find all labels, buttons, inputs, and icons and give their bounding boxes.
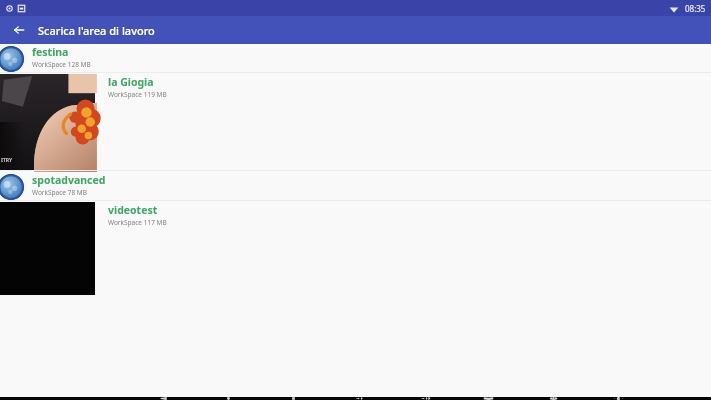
button[interactable]: Home [215,397,241,400]
staticText: ITRY [1,157,13,164]
staticText: WorkSpace 128 MB [32,60,91,69]
button[interactable]: spotadvanced [0,172,711,200]
button[interactable]: Volume down [345,397,371,400]
button[interactable]: Recents [280,397,306,400]
staticText: WorkSpace 78 MB [32,188,87,197]
staticText: festina [32,45,69,59]
button[interactable]: Power [540,397,566,400]
staticText: la Giogia [108,75,154,89]
staticText: WorkSpace 119 MB [108,90,167,99]
staticText: videotest [108,203,158,217]
button[interactable]: Hide navigation [475,397,501,400]
button[interactable]: videotest [96,202,396,228]
staticText: Scarica l'area di lavoro [38,23,155,38]
staticText: spotadvanced [32,173,106,187]
button[interactable]: festina [0,44,711,72]
button[interactable]: Back [150,397,176,400]
button[interactable]: la Giogia [96,74,396,100]
staticText: 08:35 [685,3,706,14]
staticText: WorkSpace 117 MB [108,218,167,227]
button[interactable]: Volume up [410,397,436,400]
button[interactable]: ITRY [0,74,95,170]
button[interactable]: Rotate [605,397,631,400]
button[interactable]: Back [8,19,30,41]
